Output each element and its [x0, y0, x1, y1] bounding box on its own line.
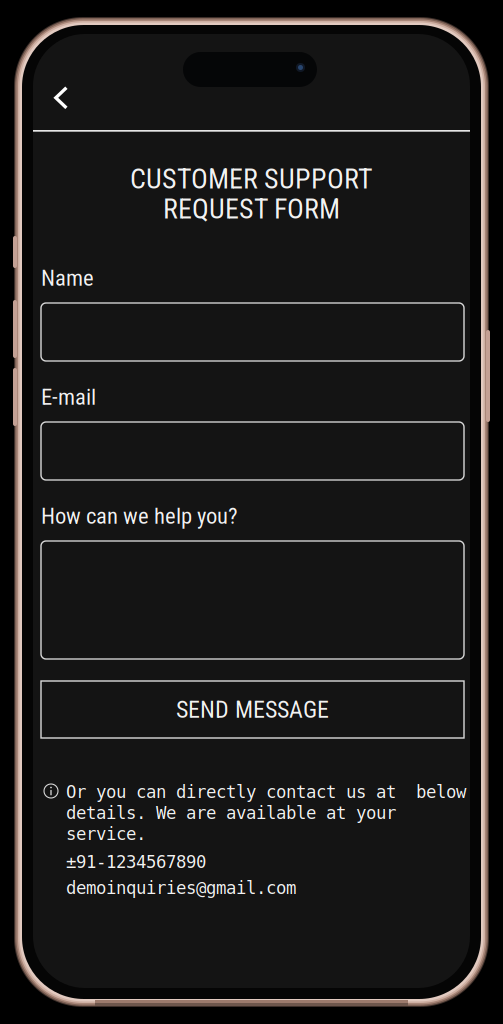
staticText: How can we help you? — [41, 503, 238, 529]
staticText: service. — [66, 824, 146, 844]
staticText: CUSTOMER SUPPORT — [130, 163, 373, 195]
staticText: demoinquiries@gmail.com — [66, 878, 296, 898]
staticText: ±91-1234567890 — [66, 852, 206, 872]
button[interactable]: SEND MESSAGE — [41, 681, 464, 738]
staticText: details. We are available at your — [66, 803, 396, 823]
staticText: Or you can directly contact us at below — [66, 782, 466, 802]
button[interactable]: Back — [42, 76, 90, 120]
staticText: SEND MESSAGE — [176, 695, 329, 723]
staticText: REQUEST FORM — [163, 193, 340, 225]
staticText: Name — [41, 265, 94, 291]
staticText: E-mail — [41, 384, 96, 410]
